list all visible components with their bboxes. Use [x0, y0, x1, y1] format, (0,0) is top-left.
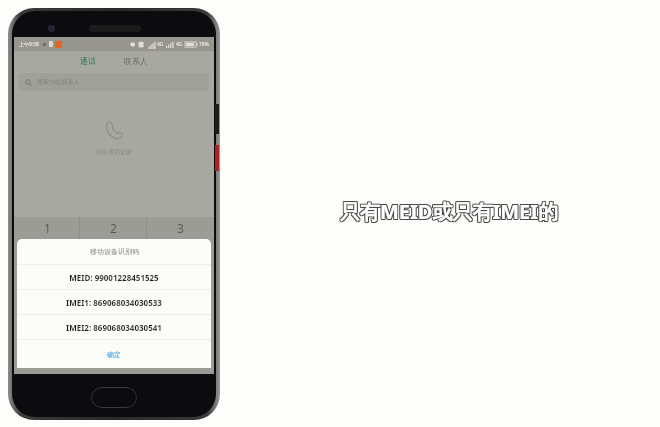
staticText: 只有MEID或只有IMEI的 — [340, 198, 559, 225]
staticText: MEID: 99001228451525 — [69, 272, 159, 283]
staticText: IMEI2: 869068034030541 — [66, 322, 162, 333]
button[interactable]: 通话 — [72, 53, 104, 69]
staticText: 只有MEID或只有IMEI的 — [339, 197, 558, 224]
staticText: 没有通话记录 — [96, 148, 132, 156]
staticText: 只有MEID或只有IMEI的 — [340, 197, 559, 224]
button[interactable]: 确定 — [17, 340, 211, 368]
staticText: 只有MEID或只有IMEI的 — [341, 198, 560, 225]
staticText: 上午9:58 — [19, 41, 39, 48]
staticText: 只有MEID或只有IMEI的 — [341, 197, 560, 224]
button[interactable]: 搜索76位联系人 — [19, 73, 209, 91]
staticText: 移动设备识别码 — [90, 247, 139, 256]
staticText: 联系人 — [124, 56, 148, 66]
staticText: 只有MEID或只有IMEI的 — [340, 199, 559, 226]
staticText: IMEI1: 869068034030533 — [66, 297, 162, 308]
staticText: 3 — [177, 220, 184, 236]
button[interactable]: Home — [91, 387, 137, 408]
staticText: 4G — [157, 41, 164, 48]
staticText: 确定 — [107, 350, 121, 359]
button[interactable]: 1 — [14, 217, 80, 239]
button[interactable]: 2 — [80, 217, 147, 239]
staticText: 1 — [44, 220, 51, 236]
staticText: 搜索76位联系人 — [37, 78, 80, 86]
staticText: 4G — [176, 41, 183, 48]
staticText: 只有MEID或只有IMEI的 — [339, 198, 558, 225]
staticText: 78% — [199, 41, 209, 48]
staticText: 只有MEID或只有IMEI的 — [339, 199, 558, 226]
button[interactable]: 3 — [147, 217, 214, 239]
staticText: 2 — [110, 220, 117, 236]
staticText: 通话 — [80, 56, 96, 66]
staticText: 只有MEID或只有IMEI的 — [341, 199, 560, 226]
button[interactable]: 联系人 — [116, 53, 156, 69]
